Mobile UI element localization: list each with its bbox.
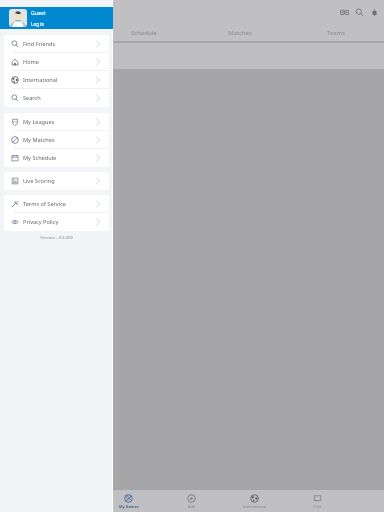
- staticText: Find Friends: [23, 40, 56, 48]
- button[interactable]: Add: [160, 490, 223, 512]
- button[interactable]: My Leagues: [4, 113, 109, 131]
- button[interactable]: Find Friends: [4, 35, 109, 53]
- staticText: Teams: [327, 29, 346, 37]
- button[interactable]: Schedule: [96, 24, 192, 41]
- button[interactable]: International: [223, 490, 286, 512]
- button[interactable]: My Games: [97, 490, 160, 512]
- staticText: Live Scoring: [23, 177, 55, 185]
- button[interactable]: Home: [4, 53, 109, 71]
- staticText: International: [23, 76, 58, 84]
- staticText: Log in: [31, 21, 45, 27]
- button[interactable]: Teams: [288, 24, 384, 41]
- button[interactable]: International: [4, 71, 109, 89]
- staticText: Matches: [228, 29, 252, 37]
- button[interactable]: My Schedule: [4, 149, 109, 167]
- button[interactable]: Privacy Policy: [4, 213, 109, 231]
- staticText: International: [243, 504, 267, 509]
- staticText: My Games: [119, 504, 139, 509]
- staticText: Guest: [31, 9, 46, 16]
- button[interactable]: Matches: [192, 24, 288, 41]
- staticText: My Leagues: [23, 118, 55, 126]
- staticText: Search: [23, 94, 41, 102]
- button[interactable]: Notifications: [367, 5, 381, 19]
- staticText: Version - 4.0.459: [0, 235, 113, 241]
- staticText: Home: [23, 58, 39, 66]
- button[interactable]: Live Scoring: [4, 172, 109, 190]
- button[interactable]: Guest: [0, 7, 113, 29]
- button[interactable]: My Matches: [4, 131, 109, 149]
- button[interactable]: Cast: [337, 5, 351, 19]
- staticText: My Schedule: [23, 154, 57, 162]
- button[interactable]: Search: [4, 89, 109, 107]
- staticText: Terms of Service: [23, 200, 66, 208]
- staticText: My Matches: [23, 136, 55, 144]
- button[interactable]: Chat: [286, 490, 349, 512]
- staticText: Add: [188, 504, 196, 509]
- button[interactable]: Search: [352, 5, 366, 19]
- staticText: Chat: [313, 504, 322, 509]
- button[interactable]: Terms of Service: [4, 195, 109, 213]
- staticText: Schedule: [131, 29, 157, 37]
- staticText: Privacy Policy: [23, 218, 59, 226]
